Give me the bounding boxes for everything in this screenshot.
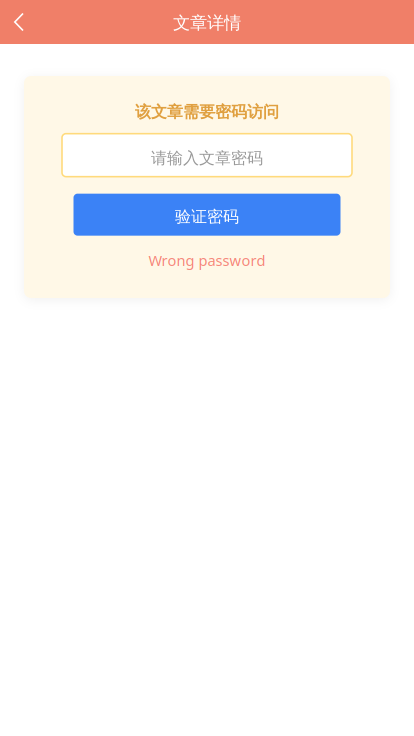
button[interactable]: Back	[0, 0, 56, 44]
button[interactable]: 请输入文章密码	[62, 134, 352, 177]
button[interactable]: 验证密码	[73, 194, 340, 236]
staticText: 文章详情	[173, 12, 241, 34]
staticText: Wrong password	[148, 251, 265, 270]
staticText: 请输入文章密码	[151, 148, 263, 168]
staticText: 验证密码	[175, 207, 239, 226]
staticText: 该文章需要密码访问	[135, 102, 279, 122]
